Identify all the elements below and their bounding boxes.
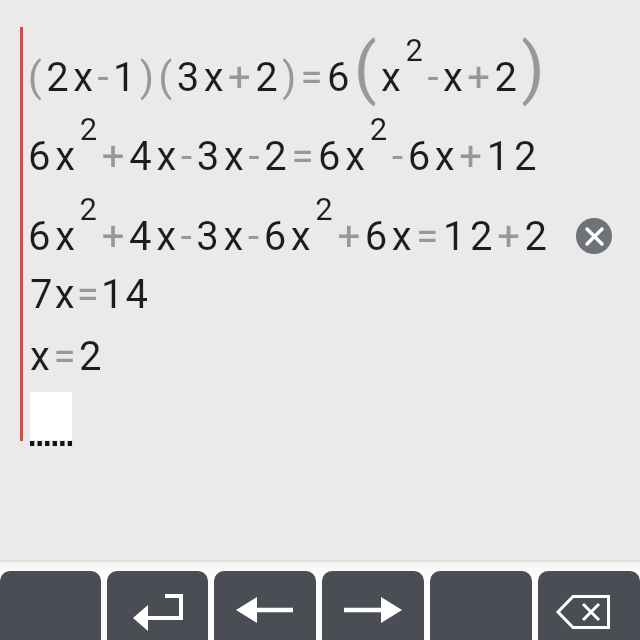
button[interactable]: [322, 571, 424, 640]
button[interactable]: [214, 571, 316, 640]
button[interactable]: [576, 218, 612, 254]
staticText: 7x=14: [30, 271, 151, 318]
staticText: x=2: [30, 333, 106, 380]
staticText: 6x2+4x-3x-6x2+6x=12+2: [28, 191, 552, 260]
staticText: (2x-1)(3x+2)=6(x2-x+2): [28, 30, 549, 107]
button[interactable]: [538, 571, 640, 640]
staticText: 6x2+4x-3x-2=6x2-6x+12: [28, 111, 542, 180]
button[interactable]: [430, 571, 532, 640]
button[interactable]: [0, 571, 101, 640]
button[interactable]: [107, 571, 208, 640]
